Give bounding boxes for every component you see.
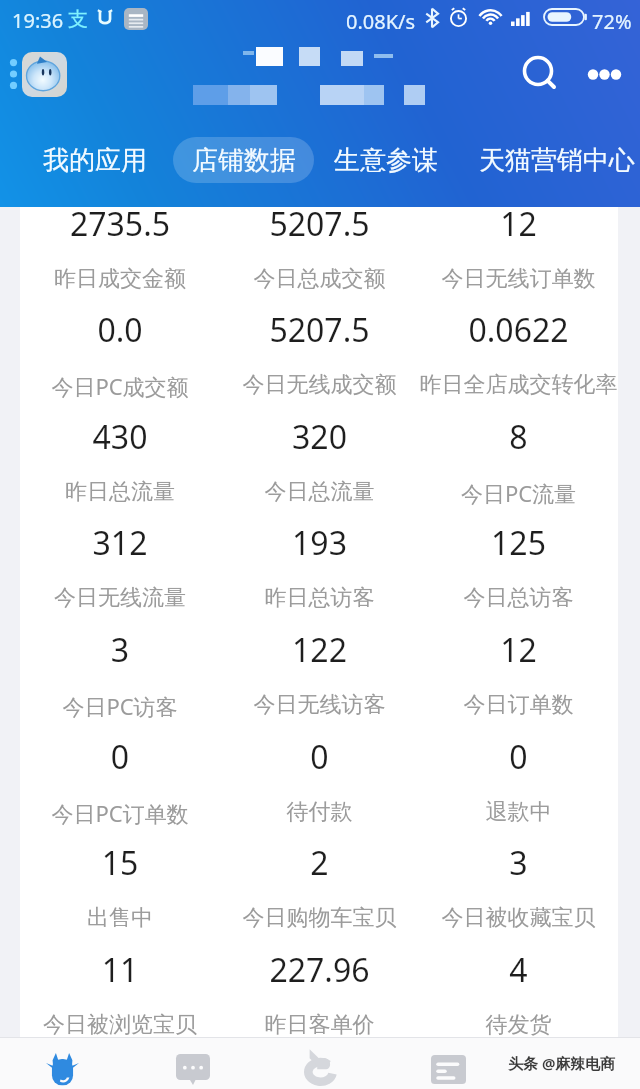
staticText: 2735.5 xyxy=(20,202,220,246)
button[interactable]: 5207.5 xyxy=(220,191,419,297)
button[interactable]: 125 xyxy=(419,510,618,616)
button[interactable]: 0 xyxy=(220,724,419,830)
staticText: 0 xyxy=(419,735,618,779)
staticText: 今日无线访客 xyxy=(220,691,419,719)
button[interactable]: 122 xyxy=(220,617,419,723)
button[interactable]: Search xyxy=(508,42,568,102)
button[interactable]: 店铺数据 xyxy=(173,137,314,183)
button[interactable]: 2 xyxy=(220,830,419,936)
button[interactable]: 3 xyxy=(20,617,220,723)
staticText: 今日PC流量 xyxy=(419,478,618,508)
staticText: 退款中 xyxy=(419,798,618,826)
button[interactable]: 11 xyxy=(20,937,220,1043)
button[interactable]: Workspace xyxy=(409,1039,487,1089)
staticText: 11 xyxy=(20,948,220,992)
button[interactable]: 430 xyxy=(20,404,220,510)
staticText: 227.96 xyxy=(220,948,419,992)
staticText: 今日被浏览宝贝 xyxy=(20,1011,220,1039)
staticText: 320 xyxy=(220,415,419,459)
staticText: 125 xyxy=(419,521,618,565)
staticText: 待付款 xyxy=(220,798,419,826)
staticText: 今日无线订单数 xyxy=(419,265,618,293)
staticText: 昨日总流量 xyxy=(20,478,220,506)
staticText: 4 xyxy=(419,948,618,992)
staticText: 3 xyxy=(20,628,220,672)
button[interactable]: 天猫营销中心 xyxy=(457,137,640,183)
staticText: 天猫营销中心 xyxy=(479,144,635,177)
staticText: 支 xyxy=(68,7,88,32)
staticText: 今日无线流量 xyxy=(20,584,220,612)
staticText: 0 xyxy=(220,735,419,779)
button[interactable]: 0 xyxy=(419,724,618,830)
staticText: 5207.5 xyxy=(220,202,419,246)
button[interactable]: 4 xyxy=(419,937,618,1043)
button[interactable]: Discover xyxy=(282,1039,360,1089)
staticText: 15 xyxy=(20,841,220,885)
button[interactable]: 0.0 xyxy=(20,297,220,403)
button[interactable]: 2735.5 xyxy=(20,191,220,297)
staticText: 今日PC访客 xyxy=(20,691,220,721)
staticText: 昨日客单价 xyxy=(220,1011,419,1039)
staticText: 今日总成交额 xyxy=(220,265,419,293)
staticText: 0.0622 xyxy=(419,308,618,352)
staticText: 今日被收藏宝贝 xyxy=(419,904,618,932)
button[interactable]: 0.0622 xyxy=(419,297,618,403)
staticText: 0.08K/s xyxy=(346,8,416,35)
staticText: 3 xyxy=(419,841,618,885)
staticText: 生意参谋 xyxy=(334,144,438,177)
button[interactable]: 15 xyxy=(20,830,220,936)
staticText: 19:36 xyxy=(12,7,64,34)
button[interactable]: 5207.5 xyxy=(220,297,419,403)
staticText: 430 xyxy=(20,415,220,459)
staticText: 今日PC成交额 xyxy=(20,371,220,401)
button[interactable]: 生意参谋 xyxy=(312,137,459,183)
staticText: 0 xyxy=(20,735,220,779)
button[interactable]: Messages xyxy=(24,1039,102,1089)
staticText: 今日订单数 xyxy=(419,691,618,719)
button[interactable]: More xyxy=(572,48,634,98)
button[interactable]: 3 xyxy=(419,830,618,936)
staticText: 昨日总访客 xyxy=(220,584,419,612)
staticText: 2 xyxy=(220,841,419,885)
staticText: 0.0 xyxy=(20,308,220,352)
staticText: 今日无线成交额 xyxy=(220,371,419,399)
staticText: 我的应用 xyxy=(43,144,147,177)
staticText: 今日PC订单数 xyxy=(20,798,220,828)
staticText: 昨日全店成交转化率 xyxy=(419,371,618,399)
staticText: 193 xyxy=(220,521,419,565)
button[interactable]: Chat xyxy=(154,1039,232,1089)
button[interactable]: 12 xyxy=(419,617,618,723)
staticText: 312 xyxy=(20,521,220,565)
staticText: 12 xyxy=(419,628,618,672)
button[interactable]: 320 xyxy=(220,404,419,510)
button[interactable]: 193 xyxy=(220,510,419,616)
staticText: 今日总流量 xyxy=(220,478,419,506)
staticText: 今日总访客 xyxy=(419,584,618,612)
button[interactable]: 我的应用 xyxy=(21,137,168,183)
staticText: 头条 @麻辣电商 xyxy=(508,1053,616,1073)
staticText: 店铺数据 xyxy=(192,144,296,177)
button[interactable]: Account xyxy=(22,52,67,97)
staticText: 12 xyxy=(419,202,618,246)
staticText: 待发货 xyxy=(419,1011,618,1039)
staticText: 8 xyxy=(419,415,618,459)
staticText: 昨日成交金额 xyxy=(20,265,220,293)
button[interactable]: 227.96 xyxy=(220,937,419,1043)
staticText: 今日购物车宝贝 xyxy=(220,904,419,932)
staticText: 5207.5 xyxy=(220,308,419,352)
button[interactable]: 8 xyxy=(419,404,618,510)
staticText: 72% xyxy=(592,8,632,35)
button[interactable]: 312 xyxy=(20,510,220,616)
staticText: 122 xyxy=(220,628,419,672)
button[interactable]: 12 xyxy=(419,191,618,297)
button[interactable]: 0 xyxy=(20,724,220,830)
staticText: 出售中 xyxy=(20,904,220,932)
